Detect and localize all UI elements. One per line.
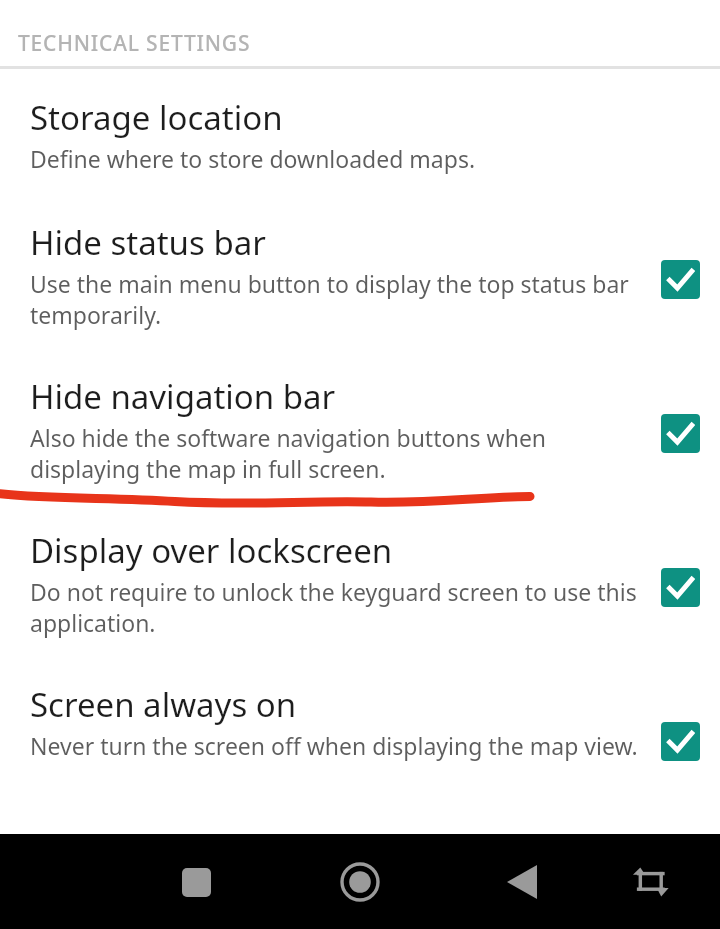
button[interactable]: Toggle setting xyxy=(661,568,700,607)
button[interactable]: Screen always on xyxy=(0,672,720,807)
staticText: Never turn the screen off when displayin… xyxy=(30,730,638,761)
staticText: Use the main menu button to display the … xyxy=(30,268,630,331)
staticText: Screen always on xyxy=(30,682,297,727)
staticText: Hide status bar xyxy=(30,220,266,265)
button[interactable]: Home xyxy=(315,852,405,912)
button[interactable]: Toggle setting xyxy=(661,260,700,299)
button[interactable]: Toggle setting xyxy=(661,722,700,761)
button[interactable]: Back xyxy=(477,852,567,912)
button[interactable]: Hide navigation bar xyxy=(0,364,720,499)
button[interactable]: Toggle setting xyxy=(661,414,700,453)
staticText: Also hide the software navigation button… xyxy=(30,422,655,485)
staticText: TECHNICAL SETTINGS xyxy=(18,29,251,58)
button[interactable]: Storage location xyxy=(0,85,720,200)
button[interactable]: Hide status bar xyxy=(0,210,720,345)
staticText: Do not require to unlock the keyguard sc… xyxy=(30,576,655,639)
button[interactable]: Display over lockscreen xyxy=(0,518,720,653)
staticText: Display over lockscreen xyxy=(30,528,393,573)
staticText: Hide navigation bar xyxy=(30,374,336,419)
button[interactable]: Rotate screen xyxy=(605,852,695,912)
button[interactable]: Recent apps xyxy=(151,852,241,912)
staticText: Storage location xyxy=(30,95,283,140)
staticText: Define where to store downloaded maps. xyxy=(30,143,476,174)
